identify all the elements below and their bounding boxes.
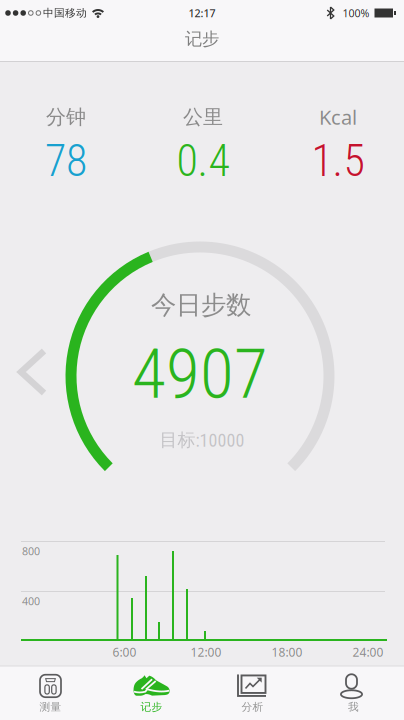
staticText: 记步 xyxy=(140,700,162,713)
staticText: 中国移动 xyxy=(43,6,87,19)
staticText: 1.5 xyxy=(311,135,364,187)
staticText: 6:00 xyxy=(112,644,136,660)
staticText: 我 xyxy=(348,700,359,713)
staticText: 今日步数 xyxy=(151,289,251,320)
staticText: 24:00 xyxy=(352,644,383,660)
button[interactable]: 我 xyxy=(303,666,404,720)
staticText: 记步 xyxy=(185,28,219,50)
staticText: 测量 xyxy=(39,700,61,713)
staticText: 4907 xyxy=(132,333,268,415)
staticText: 0.4 xyxy=(176,135,229,187)
staticText: Kcal xyxy=(319,104,357,130)
staticText: 100% xyxy=(342,6,369,20)
button[interactable]: 测量 xyxy=(0,666,101,720)
staticText: 18:00 xyxy=(271,644,302,660)
button[interactable]: 前一天 xyxy=(14,344,50,400)
button[interactable]: 记步 xyxy=(101,666,202,720)
button[interactable]: 分析 xyxy=(202,666,303,720)
staticText: 分析 xyxy=(241,700,263,713)
staticText: 78 xyxy=(45,135,87,187)
staticText: 分钟 xyxy=(46,105,86,129)
staticText: 800 xyxy=(22,544,40,558)
staticText: 目标:10000 xyxy=(159,429,244,451)
staticText: 公里 xyxy=(183,105,223,129)
staticText: 12:17 xyxy=(188,6,215,20)
staticText: 12:00 xyxy=(190,644,221,660)
staticText: 400 xyxy=(22,594,40,608)
